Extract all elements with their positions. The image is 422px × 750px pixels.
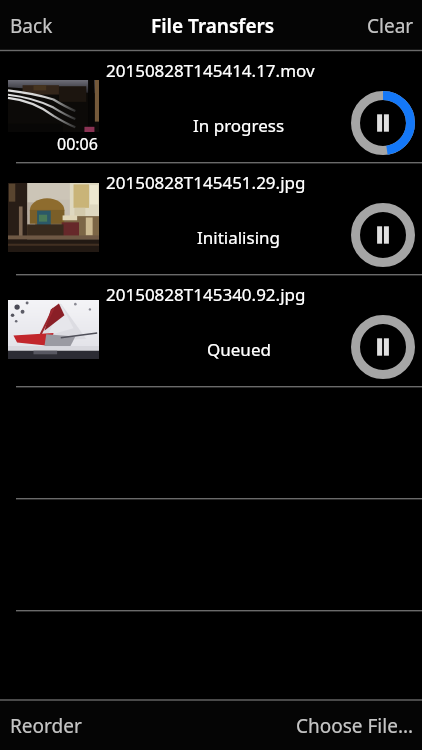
button[interactable]: Reorder — [0, 705, 92, 747]
staticText: In progress — [193, 114, 285, 137]
staticText: Queued — [207, 338, 271, 361]
staticText: Initialising — [197, 226, 280, 249]
staticText: Choose File... — [296, 713, 414, 739]
button[interactable]: Pause transfer — [351, 315, 415, 379]
staticText: 20150828T145414.17.mov — [106, 59, 315, 82]
button[interactable]: Clear — [357, 5, 422, 47]
button[interactable]: Pause transfer — [351, 91, 415, 155]
staticText: 20150828T145451.29.jpg — [106, 171, 306, 194]
staticText: Reorder — [10, 713, 82, 739]
button[interactable]: Back — [0, 5, 63, 47]
staticText: Clear — [367, 13, 414, 39]
button[interactable]: 00:06 — [0, 50, 422, 162]
button[interactable]: 20150828T145340.92.jpg — [0, 274, 422, 386]
button[interactable]: Pause transfer — [351, 203, 415, 267]
button[interactable]: 20150828T145451.29.jpg — [0, 162, 422, 274]
staticText: 00:06 — [57, 133, 98, 155]
staticText: Back — [10, 13, 53, 39]
staticText: File Transfers — [151, 13, 275, 39]
staticText: 20150828T145340.92.jpg — [106, 283, 306, 306]
button[interactable]: Choose File... — [286, 705, 422, 747]
